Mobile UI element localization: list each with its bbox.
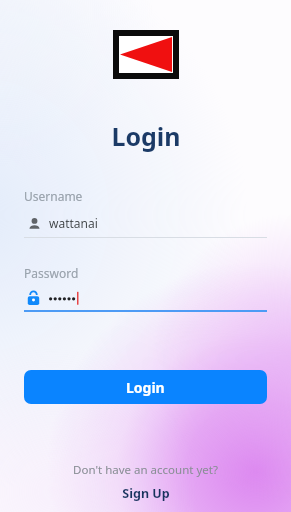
staticText: Username: [24, 188, 83, 204]
staticText: Login: [111, 119, 181, 153]
staticText: Login: [126, 378, 165, 397]
button[interactable]: wattanai: [24, 215, 267, 231]
staticText: Don't have an account yet?: [73, 462, 218, 478]
button[interactable]: [24, 290, 267, 305]
staticText: Password: [24, 265, 79, 281]
button[interactable]: Login: [24, 370, 267, 404]
staticText: wattanai: [49, 215, 98, 231]
staticText: Sign Up: [122, 485, 170, 502]
button[interactable]: Sign Up: [116, 484, 176, 503]
